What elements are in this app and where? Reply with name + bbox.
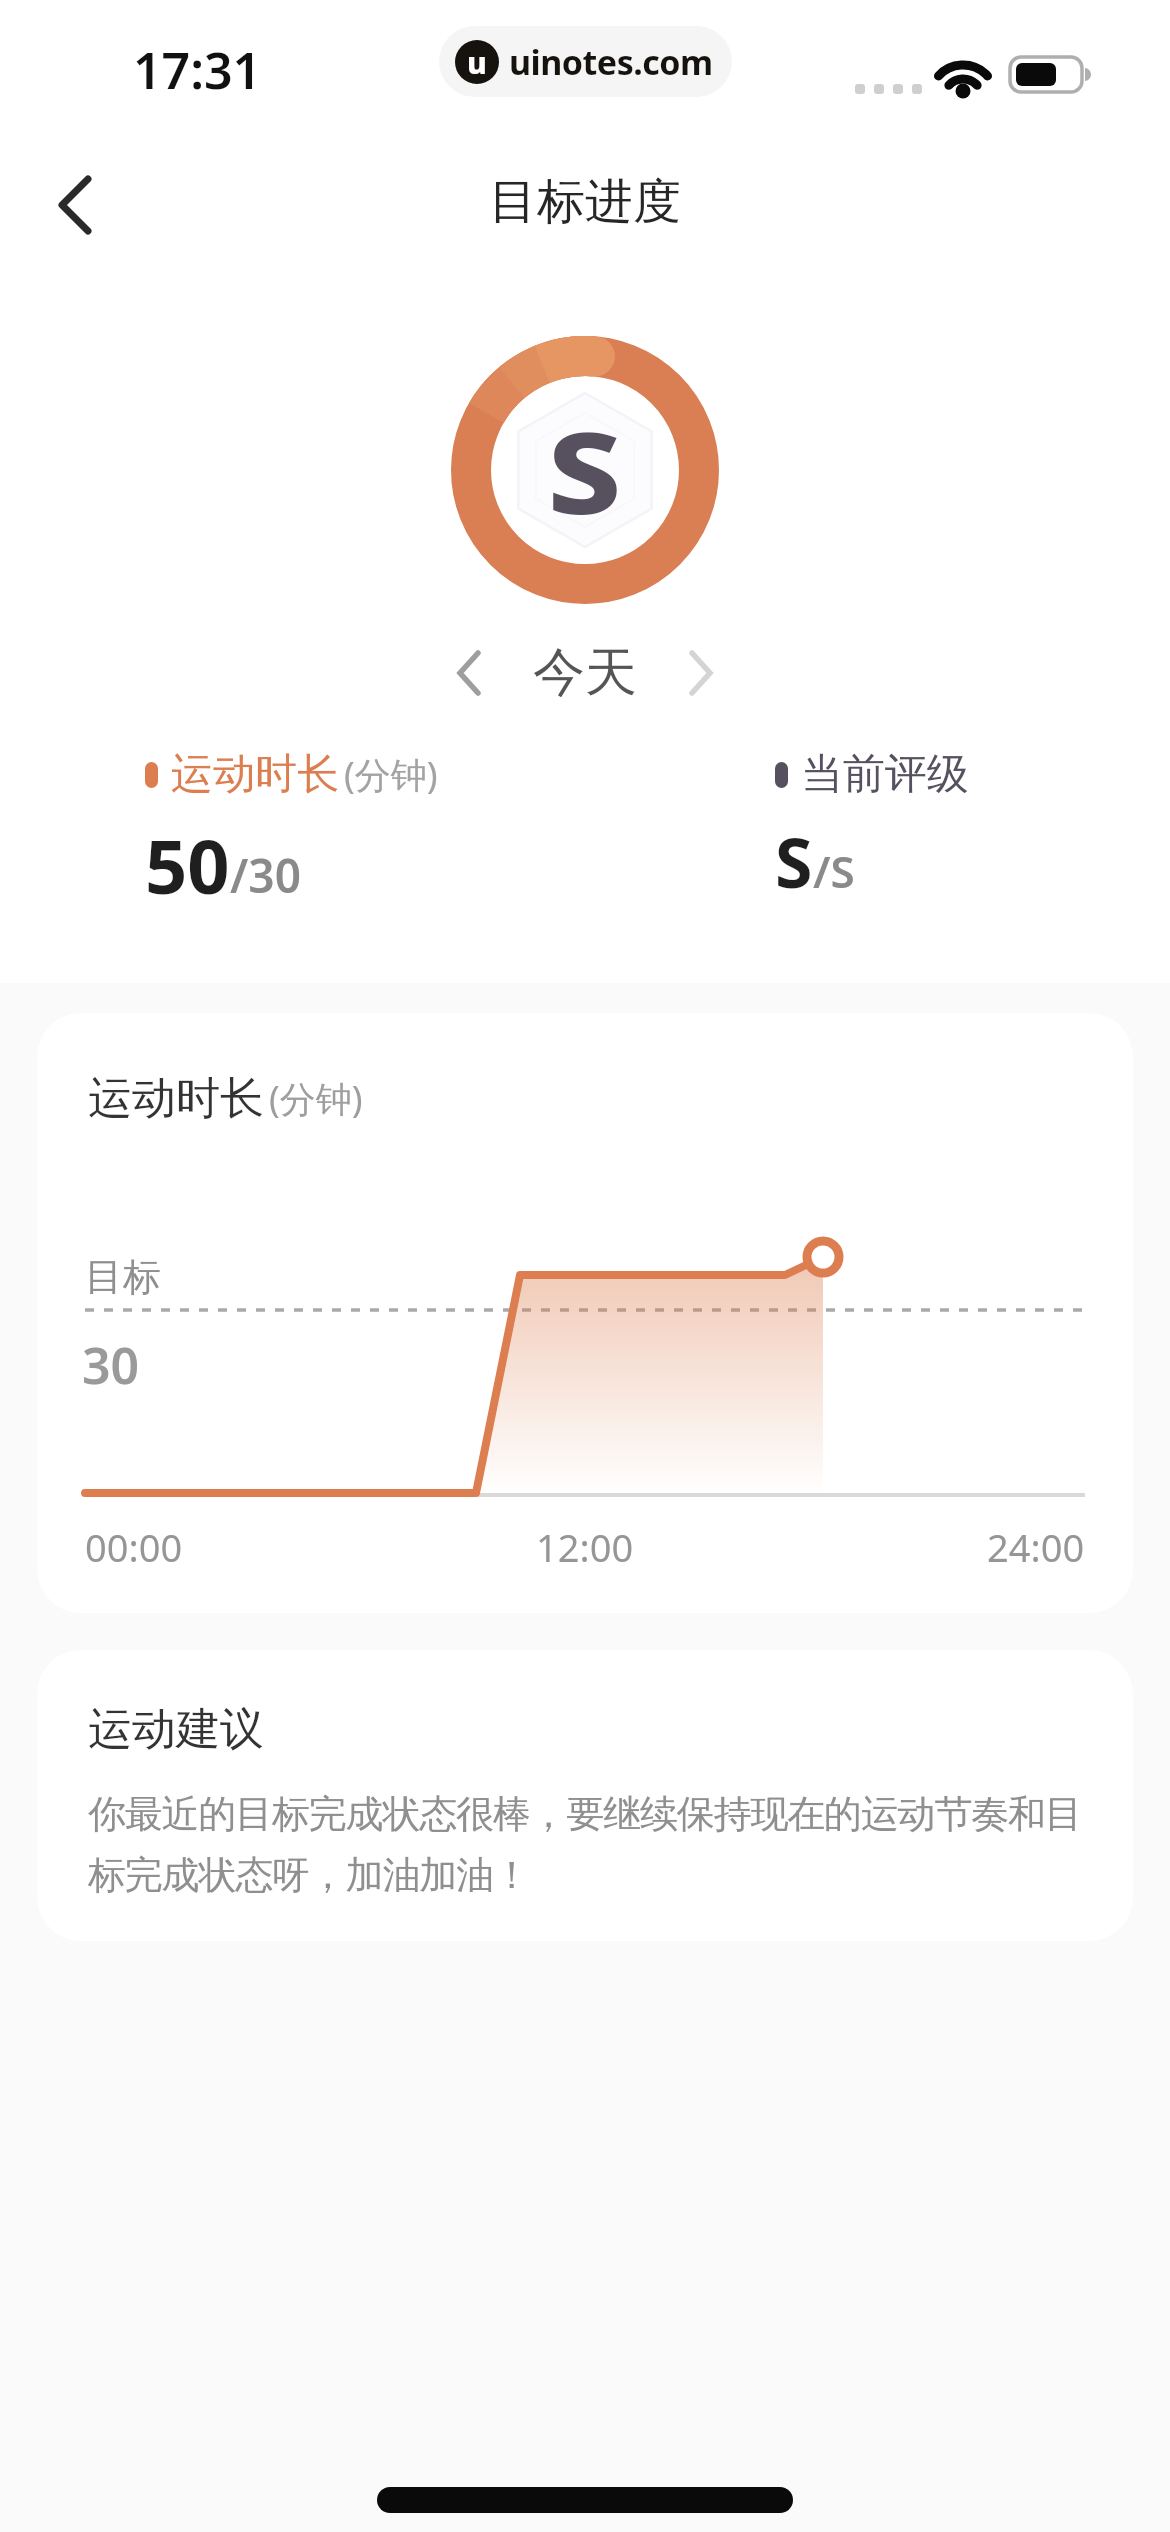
staticText: 今天 — [533, 640, 637, 706]
staticText: S — [547, 394, 623, 547]
staticText: 目标进度 — [489, 172, 681, 232]
staticText: 50 — [145, 815, 230, 916]
staticText: 目标 — [85, 1253, 161, 1301]
staticText: S — [775, 815, 813, 908]
staticText: (分钟) — [269, 1074, 363, 1123]
staticText: /30 — [230, 844, 301, 907]
staticText: 运动时长 — [88, 1071, 264, 1126]
button[interactable] — [439, 638, 499, 708]
staticText: 00:00 — [85, 1521, 183, 1573]
staticText: 17:31 — [133, 36, 262, 104]
staticText: (分钟) — [344, 750, 438, 799]
staticText: 你最近的目标完成状态很棒，要继续保持现在的运动节奏和目 标完成状态呀，加油加油！ — [88, 1790, 1082, 1900]
staticText: 运动时长 — [171, 748, 339, 801]
staticText: 30 — [82, 1331, 140, 1399]
button[interactable] — [671, 638, 731, 708]
staticText: uinotes.com — [509, 39, 713, 85]
staticText: 运动建议 — [88, 1702, 264, 1757]
staticText: /S — [813, 841, 855, 901]
staticText: 12:00 — [536, 1521, 634, 1573]
staticText: 24:00 — [987, 1521, 1085, 1573]
staticText: 当前评级 — [801, 748, 969, 801]
button[interactable] — [30, 160, 120, 250]
button[interactable]: u — [439, 26, 732, 97]
staticText: u — [467, 42, 487, 83]
